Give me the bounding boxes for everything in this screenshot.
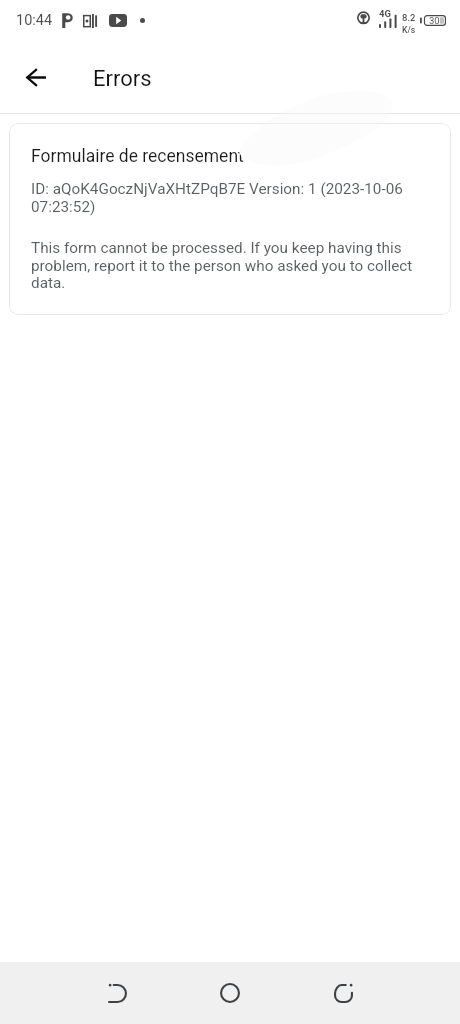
button[interactable]: Formulaire de recensement xyxy=(9,123,451,315)
staticText: Formulaire de recensement xyxy=(31,146,244,167)
button[interactable]: Back xyxy=(89,965,145,1021)
staticText: This form cannot be processed. If you ke… xyxy=(31,239,437,292)
staticText: 10:44 xyxy=(16,12,53,29)
staticText: K/s xyxy=(402,25,416,35)
staticText: 30 xyxy=(429,15,440,26)
button[interactable]: Home xyxy=(202,965,258,1021)
staticText: Errors xyxy=(93,66,152,92)
staticText: 4G xyxy=(379,8,391,19)
button[interactable]: Back xyxy=(13,54,59,100)
staticText: ID: aQoK4GoczNjVaXHtZPqB7E Version: 1 (2… xyxy=(31,180,437,216)
staticText: 8.2 xyxy=(402,12,416,23)
button[interactable]: Recents xyxy=(315,965,371,1021)
